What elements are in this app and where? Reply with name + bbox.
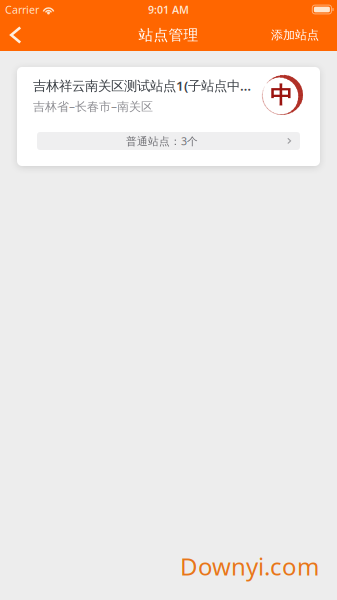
staticText: Carrier [5, 2, 39, 17]
staticText: 普通站点：3个 [126, 134, 198, 148]
button[interactable]: Back [0, 19, 46, 51]
button[interactable]: 添加站点 [257, 19, 337, 51]
staticText: 9:01 AM [148, 2, 189, 17]
staticText: Downyi.com [180, 550, 319, 582]
staticText: 添加站点 [271, 28, 319, 42]
staticText: 吉林祥云南关区测试站点1(子站点中… [33, 77, 251, 94]
button[interactable]: 吉林祥云南关区测试站点1(子站点中… [17, 67, 320, 166]
staticText: 中 [270, 82, 293, 109]
staticText: 吉林省–长春市–南关区 [33, 98, 153, 114]
staticText: 站点管理 [138, 26, 198, 44]
